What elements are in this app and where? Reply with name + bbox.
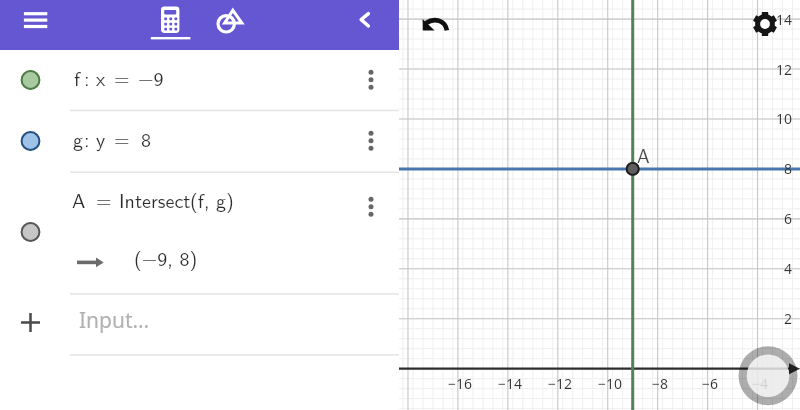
button[interactable]: Undo [416,12,456,52]
staticText: = [114,124,130,153]
button[interactable]: Settings [751,10,779,38]
button[interactable]: f [70,50,352,110]
button[interactable]: g [70,111,352,171]
staticText: A [637,141,650,169]
button[interactable]: Back [345,2,385,42]
staticText: (f, g) [190,185,234,214]
staticText: = [96,185,112,214]
button[interactable]: Geometry [206,0,250,44]
button[interactable]: Input… [0,293,399,354]
staticText: Input… [79,306,150,335]
button[interactable]: Calculator [146,0,196,50]
button[interactable]: Pan view [738,346,798,406]
staticText: −6 [702,374,719,393]
staticText: −10 [598,374,623,393]
button[interactable]: More options for f [362,66,380,94]
staticText: 10 [776,109,793,128]
staticText: −16 [448,374,473,393]
staticText: 2 [784,309,793,328]
staticText: 6 [784,209,793,228]
staticText: −9 [138,63,164,92]
button[interactable]: Toggle visibility [20,69,42,91]
staticText: −8 [652,374,669,393]
staticText: −12 [548,374,573,393]
button[interactable]: Toggle visibility [20,130,42,152]
button[interactable]: Toggle visibility [20,221,42,243]
staticText: (−9, 8) [134,243,198,272]
button[interactable]: A [70,172,352,293]
staticText: : [84,124,90,153]
button[interactable]: Open menu [16,4,56,44]
staticText: Intersect [119,185,191,214]
staticText: 8 [784,159,793,178]
staticText: 8 [141,124,151,153]
staticText: g [73,124,83,153]
staticText: −4 [752,374,769,393]
staticText: y [96,124,106,153]
staticText: 14 [776,10,793,29]
staticText: : [84,63,90,92]
staticText: = [114,63,130,92]
button[interactable]: More options for A [362,193,380,221]
button[interactable]: More options for g [362,127,380,155]
staticText: A [72,185,86,214]
staticText: f [74,63,81,92]
staticText: −14 [498,374,523,393]
staticText: x [96,63,106,92]
staticText: 12 [776,60,793,79]
staticText: 4 [784,259,793,278]
